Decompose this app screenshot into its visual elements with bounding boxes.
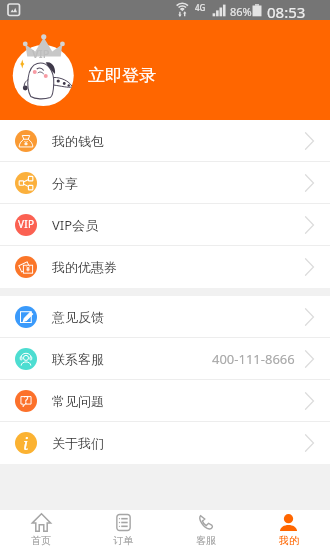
staticText: 4G — [195, 2, 206, 13]
staticText: VIP会员 — [52, 216, 99, 234]
button[interactable]: 我的优惠券 — [0, 246, 330, 288]
button[interactable]: 意见反馈 — [0, 296, 330, 338]
button[interactable]: ? — [0, 380, 330, 422]
button[interactable]: 首页 — [0, 510, 82, 550]
staticText: 意见反馈 — [52, 309, 104, 325]
staticText: 我的优惠券 — [52, 259, 117, 275]
staticText: 分享 — [52, 175, 78, 191]
button[interactable]: VIP — [0, 20, 330, 120]
staticText: 联系客服 — [52, 351, 104, 367]
staticText: 常见问题 — [52, 393, 104, 409]
staticText: ? — [24, 393, 29, 407]
button[interactable]: 我的 — [247, 510, 330, 550]
button[interactable]: 订单 — [82, 510, 164, 550]
button[interactable]: i — [0, 422, 330, 464]
staticText: 关于我们 — [52, 435, 104, 451]
staticText: 400-111-8666 — [212, 350, 295, 368]
staticText: i — [23, 432, 29, 454]
staticText: 客服 — [196, 534, 216, 547]
staticText: 订单 — [113, 534, 133, 547]
button[interactable]: 客服 — [164, 510, 247, 550]
staticText: 立即登录 — [88, 65, 156, 86]
staticText: VIP — [18, 217, 35, 231]
button[interactable]: 分享 — [0, 162, 330, 204]
staticText: 首页 — [31, 534, 51, 547]
staticText: VIP — [32, 46, 50, 61]
staticText: 我的 — [279, 534, 299, 547]
staticText: 08:53 — [267, 2, 306, 22]
staticText: 86% — [230, 4, 252, 19]
button[interactable]: 我的钱包 — [0, 120, 330, 162]
button[interactable]: VIP — [0, 204, 330, 246]
staticText: 我的钱包 — [52, 133, 104, 149]
button[interactable]: 联系客服 — [0, 338, 330, 380]
